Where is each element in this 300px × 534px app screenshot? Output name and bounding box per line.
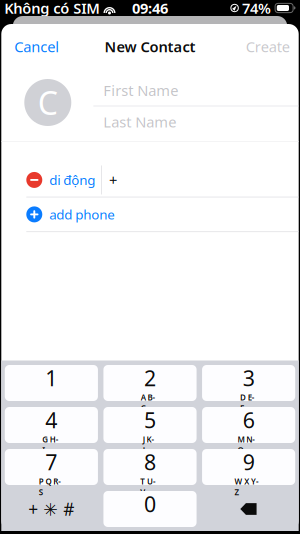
staticText: JKL (143, 434, 157, 445)
button[interactable]: Create (235, 31, 299, 62)
button[interactable]: 0 (103, 491, 196, 527)
button[interactable]: + ✳ # (5, 491, 98, 527)
staticText: 7 (45, 448, 57, 476)
button[interactable]: 6 (202, 407, 295, 443)
button[interactable]: add phone (1, 197, 299, 231)
staticText: Cancel (14, 37, 59, 56)
staticText: + ✳ # (28, 497, 74, 520)
staticText: DEF (240, 392, 257, 403)
button[interactable]: 7 (5, 449, 98, 485)
staticText: ABC (141, 392, 159, 403)
staticText: 8 (144, 448, 156, 476)
staticText: 2 (144, 364, 156, 392)
staticText: First Name (103, 80, 178, 100)
button[interactable]: 5 (103, 407, 196, 443)
staticText: Không có SIM (4, 0, 100, 18)
staticText: Create (246, 37, 290, 56)
staticText: 4 (45, 406, 57, 434)
button[interactable]: Delete (202, 491, 295, 527)
staticText: 3 (243, 364, 255, 392)
button[interactable]: 1 (5, 365, 98, 401)
staticText: 09:46 (132, 0, 168, 18)
staticText (50, 392, 52, 403)
staticText: 74% (242, 0, 271, 18)
staticText: + (109, 170, 117, 190)
staticText: 5 (144, 406, 156, 434)
staticText: PQRS (39, 476, 64, 487)
button[interactable]: 3 (202, 365, 295, 401)
staticText: WXYZ (235, 476, 263, 487)
button[interactable]: 4 (5, 407, 98, 443)
staticText: add phone (49, 205, 115, 223)
staticText: TUV (140, 476, 160, 487)
button[interactable]: Cancel (1, 31, 70, 62)
button[interactable]: 2 (103, 365, 196, 401)
staticText: di động (49, 171, 95, 189)
staticText: New Contact (104, 37, 195, 56)
staticText: Last Name (103, 112, 176, 132)
button[interactable]: Add photo (24, 79, 71, 126)
staticText: 0 (144, 490, 156, 518)
staticText: MNO (237, 434, 260, 445)
staticText: 6 (243, 406, 255, 434)
staticText: GHI (42, 434, 61, 445)
button[interactable]: 9 (202, 449, 295, 485)
button[interactable]: 8 (103, 449, 196, 485)
staticText: 1 (45, 364, 57, 392)
staticText (149, 518, 151, 529)
staticText: C (38, 81, 58, 124)
staticText: 9 (243, 448, 255, 476)
